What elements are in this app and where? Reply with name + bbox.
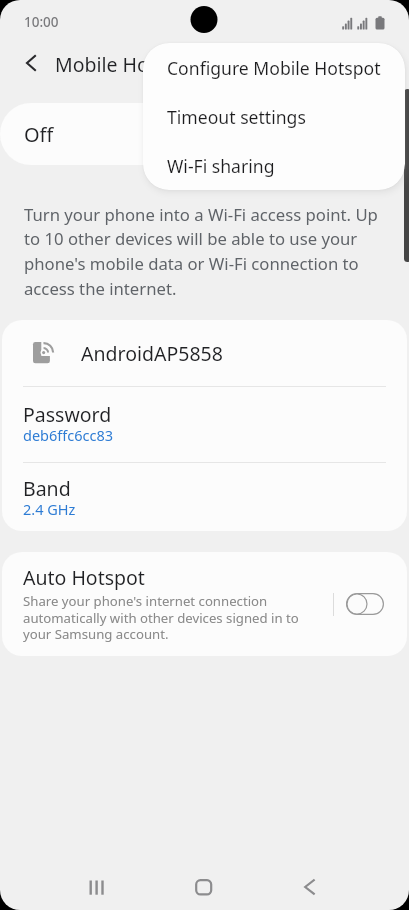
button[interactable]: Configure Mobile Hotspot	[143, 43, 405, 92]
staticText: Timeout settings	[167, 105, 306, 129]
button[interactable]: Back	[281, 864, 337, 910]
button[interactable]: Wi-Fi sharing	[143, 141, 405, 190]
staticText: Turn your phone into a Wi-Fi access poin…	[24, 203, 382, 300]
staticText: Off	[24, 121, 54, 148]
staticText: Band	[23, 475, 71, 502]
staticText: AndroidAP5858	[81, 340, 223, 367]
button[interactable]: Recent apps	[68, 864, 124, 910]
staticText: 10:00	[24, 13, 59, 31]
button[interactable]: Back	[11, 43, 51, 83]
staticText: deb6ffc6cc83	[23, 425, 114, 445]
staticText: Password	[23, 401, 112, 428]
button[interactable]: AndroidAP5858	[2, 320, 407, 386]
button[interactable]: Band	[2, 463, 407, 531]
button[interactable]: Home	[175, 864, 231, 910]
staticText: Wi-Fi sharing	[167, 154, 275, 178]
button[interactable]: Timeout settings	[143, 92, 405, 141]
staticText: Mobile Hotspot	[55, 51, 197, 78]
staticText: 2.4 GHz	[23, 499, 76, 519]
staticText: Auto Hotspot	[23, 564, 145, 591]
button[interactable]: Auto Hotspot	[2, 552, 407, 656]
staticText: Share your phone's internet connection a…	[23, 592, 309, 642]
button[interactable]: Password	[2, 387, 407, 462]
staticText: Configure Mobile Hotspot	[167, 56, 381, 80]
button[interactable]: Off	[0, 103, 407, 165]
